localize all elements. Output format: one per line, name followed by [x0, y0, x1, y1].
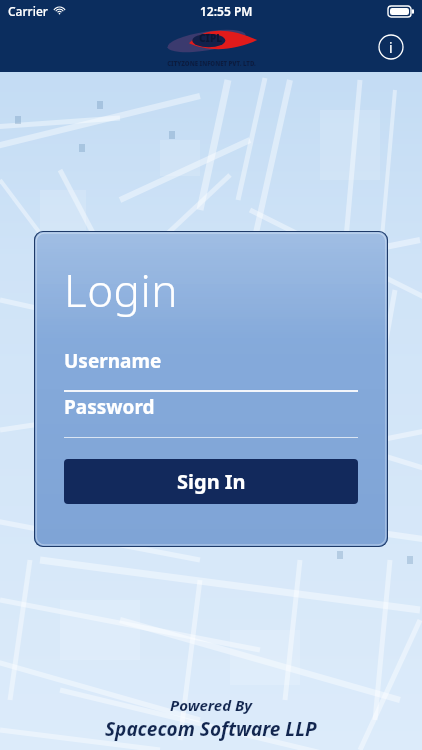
staticText: Carrier: [8, 3, 48, 19]
staticText: 12:55 PM: [200, 3, 253, 19]
staticText: Sign In: [177, 468, 246, 495]
staticText: Username: [64, 348, 162, 374]
button[interactable]: Sign In: [64, 459, 358, 504]
button[interactable]: Password: [64, 394, 358, 438]
staticText: CIPL: [199, 31, 223, 45]
staticText: Password: [64, 394, 155, 420]
staticText: i: [389, 38, 393, 57]
button[interactable]: Username: [64, 348, 358, 392]
staticText: CITYZONE INFONET PVT. LTD.: [167, 60, 256, 68]
staticText: Spacecom Software LLP: [105, 716, 317, 742]
button[interactable]: Information: [378, 34, 404, 60]
staticText: Login: [64, 260, 178, 320]
staticText: Powered By: [170, 695, 253, 715]
